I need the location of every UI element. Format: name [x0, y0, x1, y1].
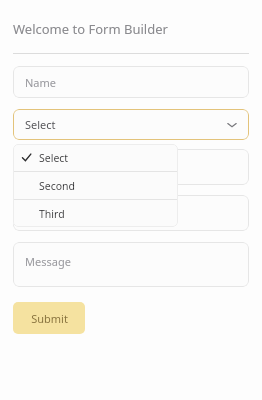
staticText: Name [25, 75, 57, 90]
button[interactable]: Select [13, 109, 249, 140]
staticText: Select [25, 117, 56, 132]
button[interactable] [13, 149, 249, 185]
button[interactable]: Select [13, 144, 178, 171]
button[interactable]: Third [13, 200, 178, 227]
staticText: Message [25, 254, 71, 269]
staticText: Select [39, 151, 69, 165]
button[interactable]: Submit [13, 302, 85, 334]
button[interactable]: Name [13, 66, 249, 98]
button[interactable] [13, 195, 249, 231]
button[interactable]: Second [13, 172, 178, 199]
staticText: Second [39, 179, 76, 193]
other: Select options menu [13, 144, 178, 227]
staticText: Welcome to Form Builder [13, 20, 168, 38]
button[interactable]: Message [13, 242, 249, 287]
staticText: Third [39, 207, 65, 221]
staticText: Submit [31, 311, 68, 326]
